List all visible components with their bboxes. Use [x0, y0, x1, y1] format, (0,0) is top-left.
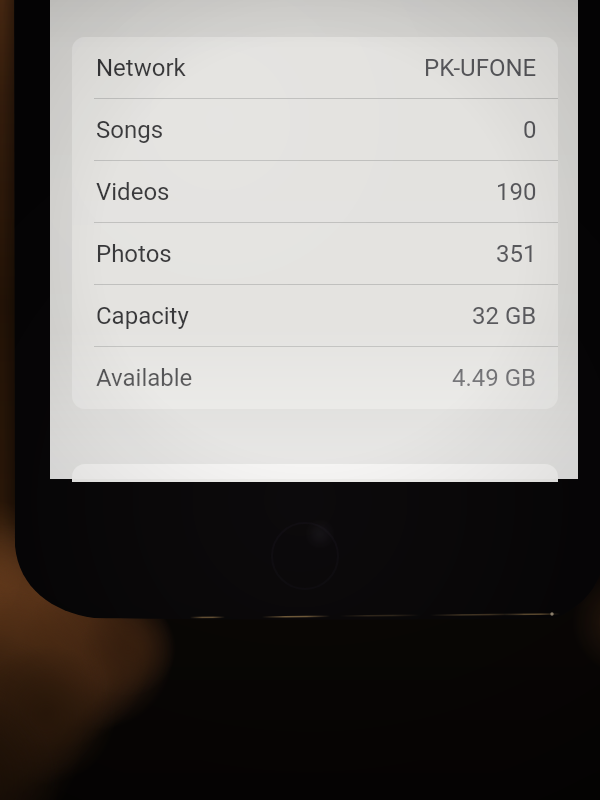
button[interactable]: Network: [72, 37, 558, 99]
button[interactable]: Songs: [72, 99, 558, 161]
staticText: 190: [496, 178, 537, 206]
staticText: 0: [523, 116, 537, 144]
button[interactable]: Capacity: [72, 285, 558, 347]
staticText: Videos: [96, 178, 170, 206]
button[interactable]: Videos: [72, 161, 558, 223]
staticText: PK-UFONE: [424, 54, 537, 82]
staticText: Capacity: [96, 302, 189, 330]
staticText: Songs: [96, 116, 164, 144]
staticText: 32 GB: [472, 302, 537, 330]
button[interactable]: Photos: [72, 223, 558, 285]
staticText: 4.49 GB: [452, 364, 537, 392]
staticText: Network: [96, 54, 186, 82]
staticText: Photos: [96, 240, 172, 268]
staticText: Available: [96, 364, 193, 392]
button[interactable]: Available: [72, 347, 558, 409]
staticText: 351: [496, 240, 537, 268]
